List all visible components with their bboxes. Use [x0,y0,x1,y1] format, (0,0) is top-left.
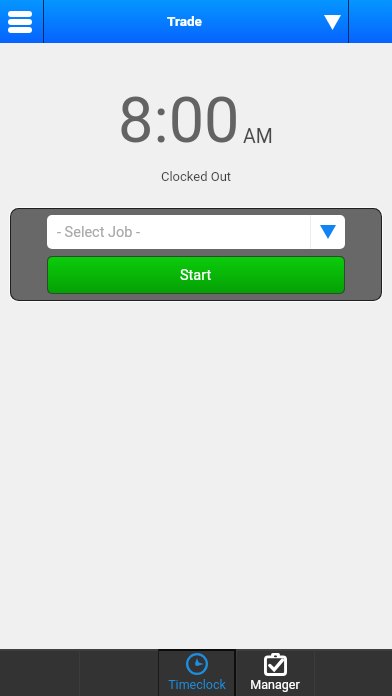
button[interactable]: Menu [0,0,43,43]
button[interactable]: Timeclock [158,649,236,696]
button[interactable]: Select location [315,0,349,43]
staticText: AM [243,125,273,148]
staticText: Trade [167,13,202,29]
button[interactable]: - Select Job - [47,215,345,249]
staticText: Manager [250,677,300,692]
button[interactable]: Start [48,257,344,293]
staticText: 8:00 [118,84,240,158]
staticText: - Select Job - [57,224,310,241]
staticText: Start [180,267,212,284]
staticText: Clocked Out [161,169,232,184]
button[interactable]: Manager [236,649,314,696]
staticText: Timeclock [168,677,226,692]
